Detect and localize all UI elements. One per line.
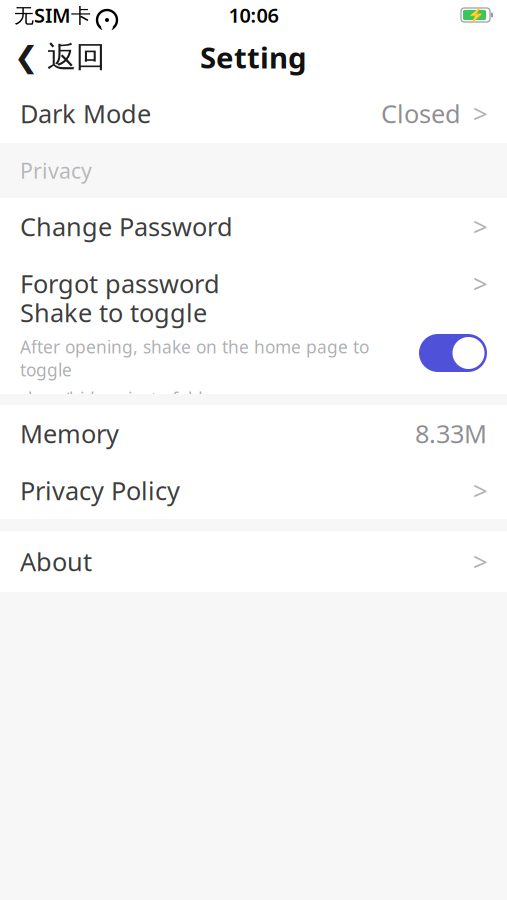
staticText: > bbox=[473, 97, 487, 130]
staticText: 无SIM卡 bbox=[14, 2, 91, 28]
button[interactable]: About bbox=[0, 531, 507, 592]
staticText: Privacy Policy bbox=[20, 474, 180, 507]
staticText: About bbox=[20, 545, 92, 578]
button[interactable]: Privacy Policy bbox=[0, 462, 507, 519]
button[interactable]: Memory bbox=[0, 405, 507, 462]
staticText: 返回 bbox=[47, 39, 105, 75]
staticText: > bbox=[473, 210, 487, 243]
staticText: ❮ bbox=[14, 40, 39, 74]
staticText: Setting bbox=[200, 37, 307, 76]
staticText: Closed bbox=[381, 97, 461, 130]
staticText: ⚡ bbox=[466, 7, 484, 23]
staticText: > bbox=[473, 267, 487, 300]
staticText: Dark Mode bbox=[20, 97, 151, 130]
staticText: After opening, shake on the home page to… bbox=[20, 335, 369, 381]
button[interactable]: ❮ bbox=[0, 30, 119, 84]
staticText: show/hide private folders bbox=[20, 387, 228, 410]
staticText: 8.33M bbox=[415, 417, 487, 450]
staticText: Privacy bbox=[20, 156, 92, 185]
staticText: > bbox=[473, 545, 487, 578]
button[interactable]: Forgot password bbox=[0, 255, 507, 312]
staticText: Change Password bbox=[20, 210, 233, 243]
button[interactable]: Shake to toggle bbox=[419, 334, 487, 372]
staticText: Memory bbox=[20, 417, 119, 450]
staticText: Forgot password bbox=[20, 267, 220, 300]
staticText: 10:06 bbox=[228, 2, 278, 28]
button[interactable]: Change Password bbox=[0, 198, 507, 255]
staticText: > bbox=[473, 474, 487, 507]
button[interactable]: Dark Mode bbox=[0, 84, 507, 143]
staticText: Shake to toggle bbox=[20, 296, 207, 329]
